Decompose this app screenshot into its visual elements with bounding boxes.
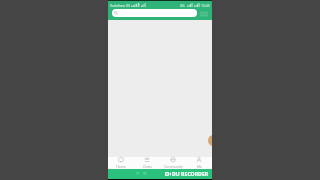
staticText: 12:45 [201,3,210,8]
staticText: DU RECORDER [172,170,209,177]
staticText: Community [164,164,183,169]
button[interactable]: Community [160,157,186,169]
button[interactable]: Add [208,135,212,146]
staticText: Vodafone IN [110,3,130,8]
button[interactable]: Menu [199,10,209,17]
staticText: 4G [180,3,185,8]
button[interactable] [112,9,197,17]
button[interactable]: Home [108,157,134,169]
staticText: Home [116,164,126,169]
staticText: Me [197,164,202,169]
button[interactable]: Chats [134,157,160,169]
staticText: Chats [143,164,152,169]
button[interactable]: Me [186,157,212,169]
